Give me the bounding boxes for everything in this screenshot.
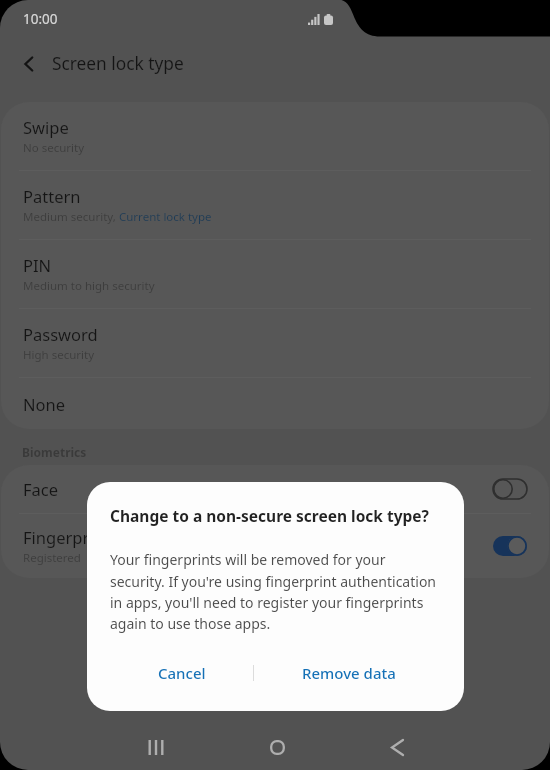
button[interactable]: Swipe: [1, 102, 549, 170]
button[interactable]: Turn on: [493, 479, 527, 499]
staticText: Swipe: [23, 116, 69, 138]
button[interactable]: Navigate up: [6, 41, 52, 87]
button[interactable]: PIN: [1, 240, 549, 308]
staticText: High security: [23, 347, 95, 363]
button[interactable]: Turn off: [493, 536, 527, 556]
staticText: Screen lock type: [52, 52, 184, 76]
button[interactable]: Home: [253, 724, 301, 770]
staticText: Fingerprints: [23, 526, 118, 548]
staticText: Biometrics: [22, 444, 87, 460]
staticText: Remove data: [302, 663, 396, 683]
staticText: Medium to high security: [23, 278, 155, 294]
button[interactable]: Fingerprints: [1, 514, 549, 578]
staticText: 10:00: [23, 10, 58, 28]
staticText: Cancel: [158, 663, 206, 683]
staticText: Password: [23, 323, 98, 345]
staticText: Medium security,: [23, 209, 119, 225]
button[interactable]: Back: [373, 724, 421, 770]
staticText: Face: [23, 478, 59, 500]
staticText: No security: [23, 140, 85, 156]
button[interactable]: Face: [1, 465, 549, 513]
button[interactable]: Pattern: [1, 171, 549, 239]
button[interactable]: Cancel: [109, 649, 255, 697]
button[interactable]: None: [1, 378, 549, 429]
staticText: Current lock type: [119, 209, 212, 225]
button[interactable]: Remove data: [254, 649, 443, 697]
staticText: Your fingerprints will be removed for yo…: [110, 550, 437, 633]
staticText: None: [23, 393, 66, 415]
staticText: Registered: [23, 550, 81, 566]
staticText: Pattern: [23, 185, 81, 207]
button[interactable]: Recents: [132, 724, 180, 770]
button[interactable]: Password: [1, 309, 549, 377]
staticText: Change to a non-secure screen lock type?: [110, 505, 430, 526]
staticText: PIN: [23, 254, 52, 276]
